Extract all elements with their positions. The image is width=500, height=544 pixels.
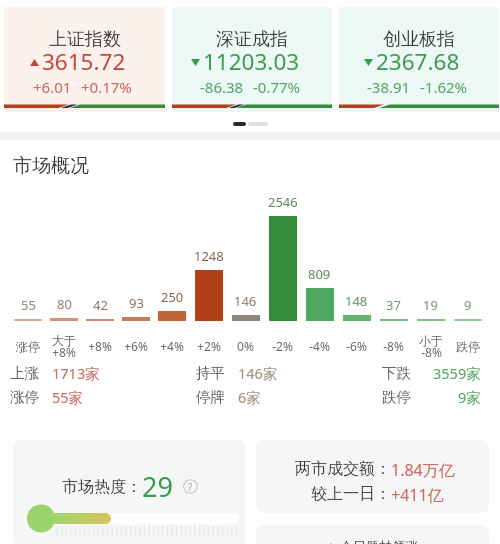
staticText: 80 xyxy=(57,295,72,313)
button[interactable]: 两市成交额： xyxy=(256,440,489,513)
staticText: 9家 xyxy=(458,387,481,407)
staticText: 下跌 xyxy=(382,364,411,382)
staticText: +6% xyxy=(124,338,148,354)
staticText: 0% xyxy=(237,338,254,354)
staticText: 2546 xyxy=(268,193,298,211)
staticText: -2% xyxy=(272,338,293,354)
staticText: 42 xyxy=(93,296,108,314)
staticText: 市场概况 xyxy=(13,154,89,178)
staticText: 市场热度： xyxy=(62,477,142,497)
staticText: 250 xyxy=(161,288,184,306)
button[interactable]: 深证成指 xyxy=(172,7,332,112)
staticText: 今日题材领涨 xyxy=(340,538,418,544)
staticText: 跌停 xyxy=(456,339,480,354)
staticText: 涨停 xyxy=(10,388,39,406)
staticText: 持平 xyxy=(196,364,225,382)
staticText: -1.62% xyxy=(420,77,468,97)
staticText: 停牌 xyxy=(196,388,225,406)
staticText: +8% xyxy=(52,344,76,360)
staticText: 上证指数 xyxy=(49,28,121,51)
staticText: 6家 xyxy=(238,387,261,407)
staticText: 大于 xyxy=(52,333,76,348)
staticText: -86.38 xyxy=(200,77,244,97)
staticText: 37 xyxy=(386,296,401,314)
staticText: 146家 xyxy=(238,363,278,383)
staticText: 3615.72 xyxy=(42,46,126,77)
staticText: 9 xyxy=(464,296,472,314)
button[interactable]: 上证指数 xyxy=(4,7,165,112)
staticText: 11203.03 xyxy=(203,46,300,77)
staticText: -6% xyxy=(346,338,367,354)
button[interactable]: 今日题材领涨 xyxy=(256,525,489,544)
staticText: 93 xyxy=(129,294,144,312)
staticText: -8% xyxy=(421,344,442,360)
staticText: 809 xyxy=(308,265,331,283)
staticText: +411亿 xyxy=(391,484,444,506)
button[interactable]: 市场热度： xyxy=(13,440,246,544)
staticText: +8% xyxy=(88,338,112,354)
staticText: 深证成指 xyxy=(216,28,288,51)
other: 热度说明 xyxy=(183,479,198,494)
staticText: 1248 xyxy=(194,247,224,265)
staticText: -4% xyxy=(309,338,330,354)
staticText: 创业板指 xyxy=(383,28,455,51)
staticText: -38.91 xyxy=(367,77,411,97)
staticText: 146 xyxy=(234,292,257,310)
staticText: 小于 xyxy=(419,333,443,348)
staticText: 55 xyxy=(21,296,36,314)
staticText: 涨停 xyxy=(16,339,40,354)
staticText: 跌停 xyxy=(382,388,411,406)
staticText: 两市成交额： xyxy=(295,459,391,479)
staticText: -8% xyxy=(383,338,404,354)
staticText: 19 xyxy=(423,296,438,314)
staticText: +4% xyxy=(160,338,184,354)
staticText: 较上一日： xyxy=(311,484,391,504)
staticText: 1.84万亿 xyxy=(391,459,455,481)
staticText: ? xyxy=(188,480,193,494)
staticText: 2367.68 xyxy=(376,46,460,77)
staticText: 上涨 xyxy=(10,364,39,382)
staticText: 3559家 xyxy=(433,363,481,383)
staticText: 29 xyxy=(142,468,173,505)
staticText: +2% xyxy=(197,338,221,354)
staticText: 1713家 xyxy=(52,363,100,383)
staticText: +0.17% xyxy=(81,77,132,97)
staticText: -0.77% xyxy=(253,77,301,97)
staticText: +6.01 xyxy=(33,77,72,97)
button[interactable]: 创业板指 xyxy=(339,7,499,112)
staticText: 148 xyxy=(345,292,368,310)
staticText: 55家 xyxy=(52,387,84,407)
